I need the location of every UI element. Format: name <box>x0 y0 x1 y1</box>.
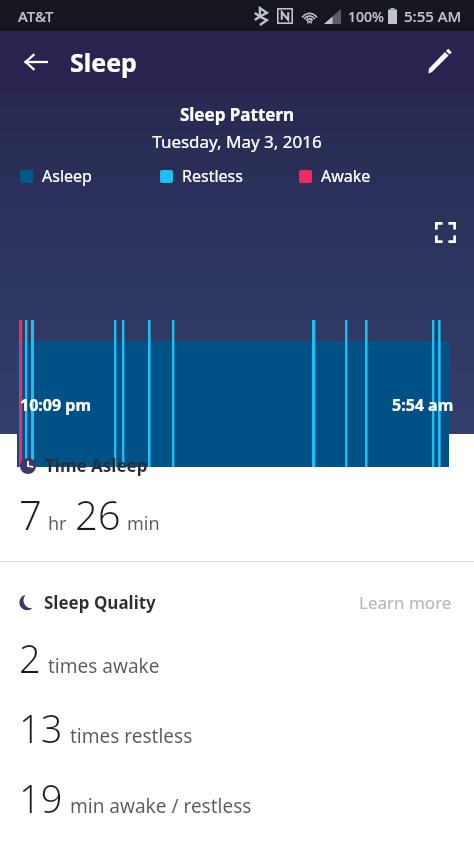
button[interactable]: Back <box>14 40 58 84</box>
staticText: 19 <box>19 772 63 824</box>
staticText: 26 <box>75 487 121 541</box>
staticText: 13 <box>19 702 63 754</box>
staticText: 5:54 am <box>392 394 454 416</box>
staticText: Sleep <box>70 45 137 79</box>
staticText: 100% <box>348 7 384 26</box>
button[interactable]: Expand chart <box>424 211 466 253</box>
staticText: AT&T <box>18 6 54 26</box>
staticText: times awake <box>48 653 160 679</box>
staticText: Sleep Pattern <box>0 103 474 126</box>
staticText: Restless <box>182 165 243 187</box>
staticText: times restless <box>70 723 193 749</box>
staticText: 10:09 pm <box>20 394 91 416</box>
staticText: Sleep Quality <box>44 591 156 614</box>
staticText: min <box>127 511 160 536</box>
staticText: min awake / restless <box>70 793 252 819</box>
staticText: Awake <box>321 165 371 187</box>
staticText: 7 <box>19 487 42 541</box>
staticText: hr <box>48 511 67 536</box>
staticText: Asleep <box>42 165 92 187</box>
staticText: 5:55 AM <box>404 6 462 26</box>
staticText: Learn more <box>359 591 452 614</box>
staticText: Time Asleep <box>45 454 148 477</box>
staticText: 2 <box>19 632 41 684</box>
button[interactable]: Learn more <box>355 587 456 618</box>
button[interactable]: Edit <box>416 39 462 85</box>
staticText: Tuesday, May 3, 2016 <box>0 130 474 153</box>
